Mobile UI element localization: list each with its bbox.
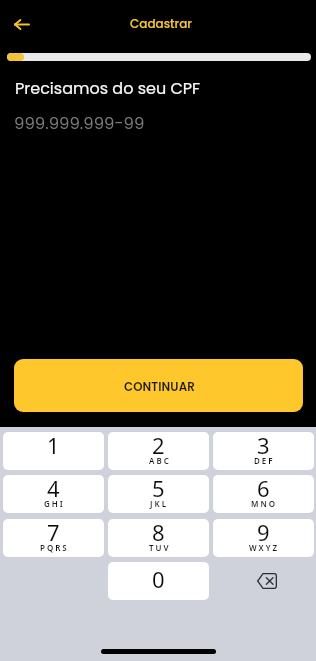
staticText: 5 (152, 475, 165, 503)
button[interactable]: 2 (108, 432, 209, 470)
staticText: WXYZ (249, 542, 280, 553)
button[interactable]: Voltar (3, 5, 41, 43)
button[interactable]: 4 (3, 475, 104, 513)
staticText: ABC (149, 455, 171, 466)
staticText: Cadastrar (130, 15, 192, 32)
button[interactable]: 0 (108, 562, 209, 600)
button[interactable]: 3 (213, 432, 314, 470)
button[interactable]: Apagar (213, 562, 314, 600)
staticText: 4 (47, 475, 60, 503)
staticText: 1 (47, 432, 60, 460)
staticText: 999.999.999-99 (14, 112, 145, 135)
button[interactable]: 1 (3, 432, 104, 470)
button[interactable]: 9 (213, 519, 314, 557)
staticText: Precisamos do seu CPF (15, 77, 201, 99)
staticText: GHI (44, 498, 65, 509)
button[interactable]: CONTINUAR (14, 359, 303, 412)
staticText: 0 (152, 564, 165, 594)
staticText: 9 (257, 519, 270, 547)
staticText: 2 (152, 432, 165, 460)
staticText: DEF (254, 455, 275, 466)
staticText: TUV (149, 542, 171, 553)
staticText: MNO (251, 498, 278, 509)
staticText: 6 (257, 475, 270, 503)
staticText: 8 (152, 519, 165, 547)
staticText: 7 (47, 519, 60, 547)
button[interactable]: 5 (108, 475, 209, 513)
staticText: 3 (257, 432, 270, 460)
button[interactable]: 7 (3, 519, 104, 557)
button[interactable]: 6 (213, 475, 314, 513)
button[interactable]: 8 (108, 519, 209, 557)
staticText: CONTINUAR (124, 379, 195, 396)
staticText: PQRS (40, 542, 69, 553)
staticText: JKL (150, 498, 169, 509)
